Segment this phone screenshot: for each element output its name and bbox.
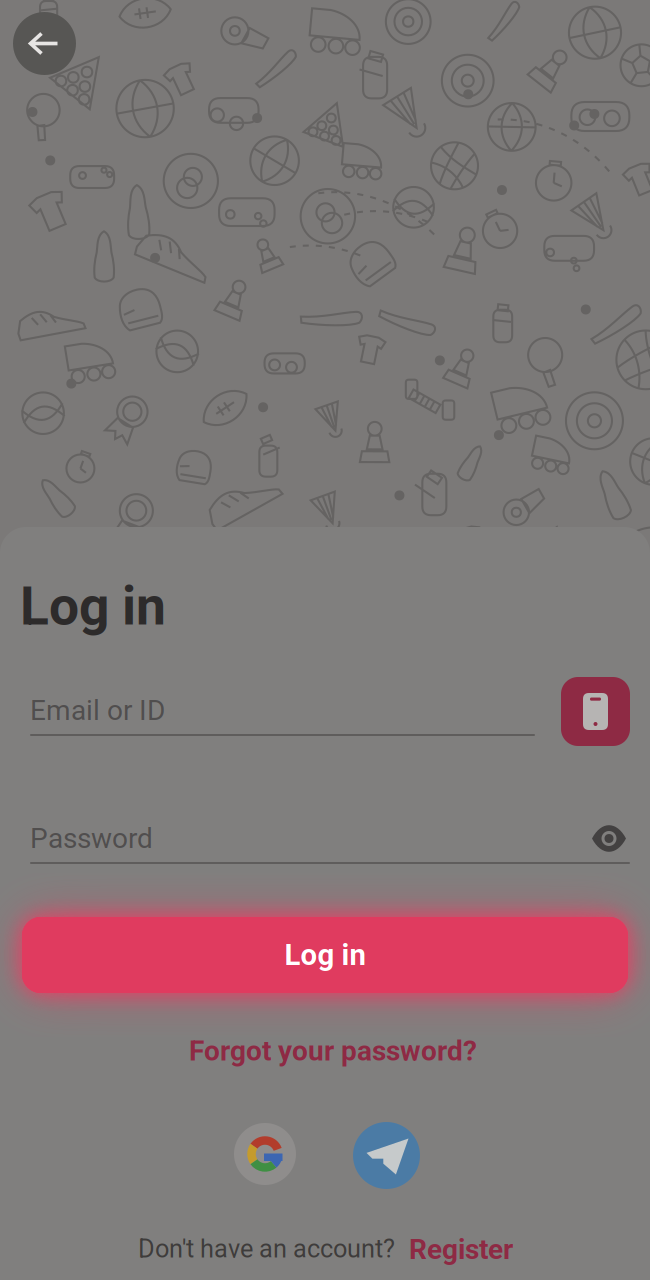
button[interactable]: Continue with Google xyxy=(234,1123,296,1185)
staticText: Don't have an account? xyxy=(138,1234,395,1264)
button[interactable]: Forgot your password? xyxy=(30,1031,636,1071)
button[interactable]: Show password xyxy=(592,826,626,851)
staticText: Register xyxy=(409,1233,513,1266)
button[interactable]: Continue with Telegram xyxy=(353,1122,420,1189)
staticText: Email or ID xyxy=(30,694,165,727)
button[interactable]: Log in xyxy=(22,917,628,993)
button[interactable]: Back xyxy=(13,12,76,75)
button[interactable]: Register xyxy=(409,1233,513,1266)
staticText: Log in xyxy=(284,938,365,972)
staticText: Log in xyxy=(20,575,166,637)
staticText: Password xyxy=(30,822,153,855)
button[interactable]: Log in with phone number xyxy=(561,677,630,746)
staticText: Forgot your password? xyxy=(189,1035,477,1067)
